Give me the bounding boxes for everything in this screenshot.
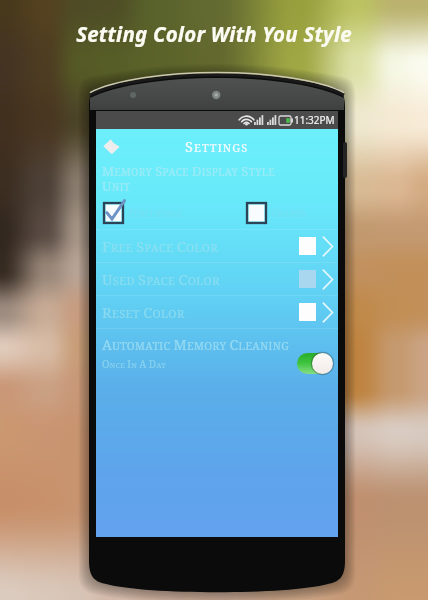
staticText: AUTOMATIC MEMORY CLEANING <box>102 335 290 354</box>
button[interactable]: Back <box>99 134 123 158</box>
staticText: USED SPACE COLOR <box>102 269 299 289</box>
button[interactable]: GRAPHS <box>247 203 306 223</box>
staticText: 11:32PM <box>294 113 335 127</box>
button[interactable]: AUTOMATIC MEMORY CLEANING <box>96 329 338 379</box>
staticText: Setting Color With You Style <box>76 20 352 48</box>
staticText: SETTINGS <box>185 136 249 156</box>
staticText: MEMORY SPACE DISPLAY STYLE UNIT <box>102 162 298 195</box>
staticText: PERCENTAGE <box>128 206 183 220</box>
staticText: ONCE IN A DAY <box>102 357 167 371</box>
staticText: GRAPHS <box>271 206 306 220</box>
button[interactable]: FREE SPACE COLOR <box>96 230 338 262</box>
button[interactable]: PERCENTAGE <box>104 203 183 223</box>
button[interactable]: RESET COLOR <box>96 296 338 328</box>
button[interactable]: USED SPACE COLOR <box>96 263 338 295</box>
staticText: RESET COLOR <box>102 302 299 322</box>
button[interactable]: Automatic memory cleaning switch <box>297 353 332 374</box>
staticText: FREE SPACE COLOR <box>102 236 299 256</box>
